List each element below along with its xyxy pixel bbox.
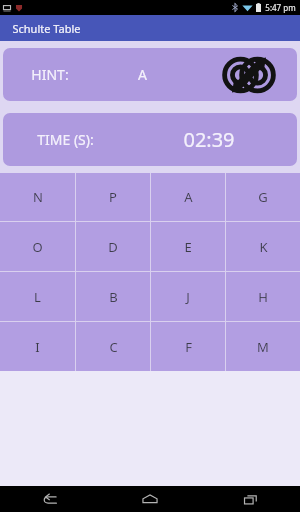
staticText: N [33, 188, 43, 206]
staticText: 02:39 [183, 126, 235, 153]
button[interactable]: O [0, 222, 75, 271]
staticText: O [32, 238, 43, 256]
staticText: HINT: [31, 65, 69, 84]
staticText: TIME (S): [37, 130, 94, 149]
staticText: D [108, 238, 118, 256]
button[interactable]: D [76, 222, 150, 271]
staticText: E [184, 238, 192, 256]
staticText: K [259, 238, 268, 256]
button[interactable]: C [76, 322, 150, 371]
button[interactable]: P [76, 173, 150, 221]
button[interactable]: E [151, 222, 225, 271]
button[interactable]: B [76, 272, 150, 321]
button[interactable]: L [0, 272, 75, 321]
button[interactable]: K [226, 222, 300, 271]
button[interactable]: HINT: [3, 48, 297, 101]
button[interactable]: Shuffle letters [225, 51, 273, 99]
staticText: C [109, 338, 118, 356]
button[interactable]: A [151, 173, 225, 221]
staticText: G [258, 188, 268, 206]
button[interactable]: G [226, 173, 300, 221]
staticText: A [184, 188, 193, 206]
staticText: L [34, 288, 41, 306]
button[interactable]: I [0, 322, 75, 371]
button[interactable]: F [151, 322, 225, 371]
button[interactable]: M [226, 322, 300, 371]
button[interactable]: H [226, 272, 300, 321]
staticText: Schulte Table [12, 21, 81, 36]
staticText: F [185, 338, 192, 356]
staticText: A [138, 65, 147, 84]
staticText: P [109, 188, 117, 206]
staticText: I [35, 338, 40, 356]
button[interactable]: Recent apps [200, 486, 300, 512]
staticText: B [109, 288, 118, 306]
button[interactable]: TIME (S): [3, 113, 297, 166]
button[interactable]: N [0, 173, 75, 221]
staticText: H [258, 288, 268, 306]
button[interactable]: Back [0, 486, 100, 512]
button[interactable]: J [151, 272, 225, 321]
staticText: J [186, 288, 190, 306]
staticText: 5:47 pm [265, 2, 296, 13]
button[interactable]: Home [100, 486, 200, 512]
staticText: M [257, 338, 269, 356]
